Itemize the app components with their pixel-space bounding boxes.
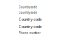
staticText: Country code bbox=[18, 5, 37, 9]
staticText: Country code bbox=[18, 24, 41, 29]
staticText: Country code bbox=[18, 11, 37, 14]
staticText: Phone number bbox=[18, 31, 40, 35]
staticText: Country code bbox=[18, 16, 41, 22]
